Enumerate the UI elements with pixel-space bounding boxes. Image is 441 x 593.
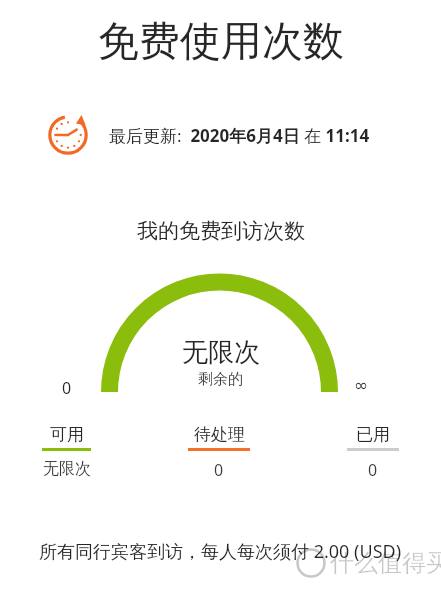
staticText: ∞ <box>354 375 369 395</box>
staticText: 最后更新: 2020年6月4日 在 11:14 <box>109 124 370 147</box>
staticText: 免费使用次数 <box>98 16 344 68</box>
staticText: 待处理 <box>194 424 245 445</box>
staticText: 什么值得买 <box>330 548 441 578</box>
button[interactable]: 已用 <box>347 424 399 481</box>
button[interactable]: 可用 <box>42 424 91 479</box>
staticText: 可用 <box>50 424 84 445</box>
button[interactable]: 待处理 <box>188 424 250 481</box>
staticText: 所有同行宾客到访，每人每次须付 2.00 (USD) <box>39 539 402 564</box>
staticText: 剩余的 <box>198 370 243 389</box>
staticText: 我的免费到访次数 <box>137 218 305 244</box>
staticText: 0 <box>368 459 378 481</box>
staticText: 0 <box>214 459 224 481</box>
button[interactable]: Last updated <box>45 112 370 158</box>
staticText: 0 <box>62 377 72 399</box>
staticText: 无限次 <box>43 459 91 479</box>
other: Last updated <box>45 112 91 158</box>
staticText: 已用 <box>356 424 390 445</box>
staticText: 无限次 <box>182 336 260 369</box>
